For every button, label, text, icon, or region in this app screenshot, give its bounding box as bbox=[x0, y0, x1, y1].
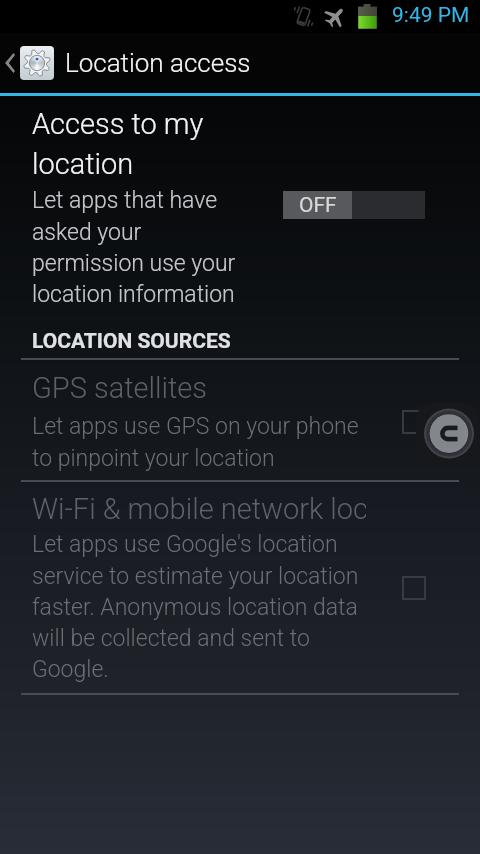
staticText: Let apps use Google's location service t… bbox=[32, 531, 372, 682]
button[interactable]: Screen recorder bbox=[416, 403, 479, 466]
staticText: 9:49 PM bbox=[392, 3, 470, 28]
staticText: Let apps use GPS on your phone to pinpoi… bbox=[32, 413, 362, 471]
staticText: LOCATION SOURCES bbox=[32, 329, 231, 354]
button[interactable]: Wi-Fi & mobile network location bbox=[403, 577, 425, 599]
staticText: OFF bbox=[299, 193, 337, 218]
staticText: Location access bbox=[65, 48, 251, 78]
staticText: Wi-Fi & mobile network location bbox=[32, 492, 366, 526]
button[interactable]: Access to my location bbox=[0, 107, 480, 307]
button[interactable]: GPS satellites bbox=[403, 411, 425, 433]
staticText: Access to my location bbox=[32, 107, 247, 181]
button[interactable]: Navigate up bbox=[0, 33, 480, 93]
button[interactable]: Wi-Fi & mobile network location bbox=[0, 482, 480, 692]
staticText: GPS satellites bbox=[32, 371, 370, 405]
staticText: Let apps that have asked your permission… bbox=[32, 187, 247, 307]
button[interactable]: Access to my location, off bbox=[283, 191, 425, 219]
button[interactable]: GPS satellites bbox=[0, 360, 480, 479]
